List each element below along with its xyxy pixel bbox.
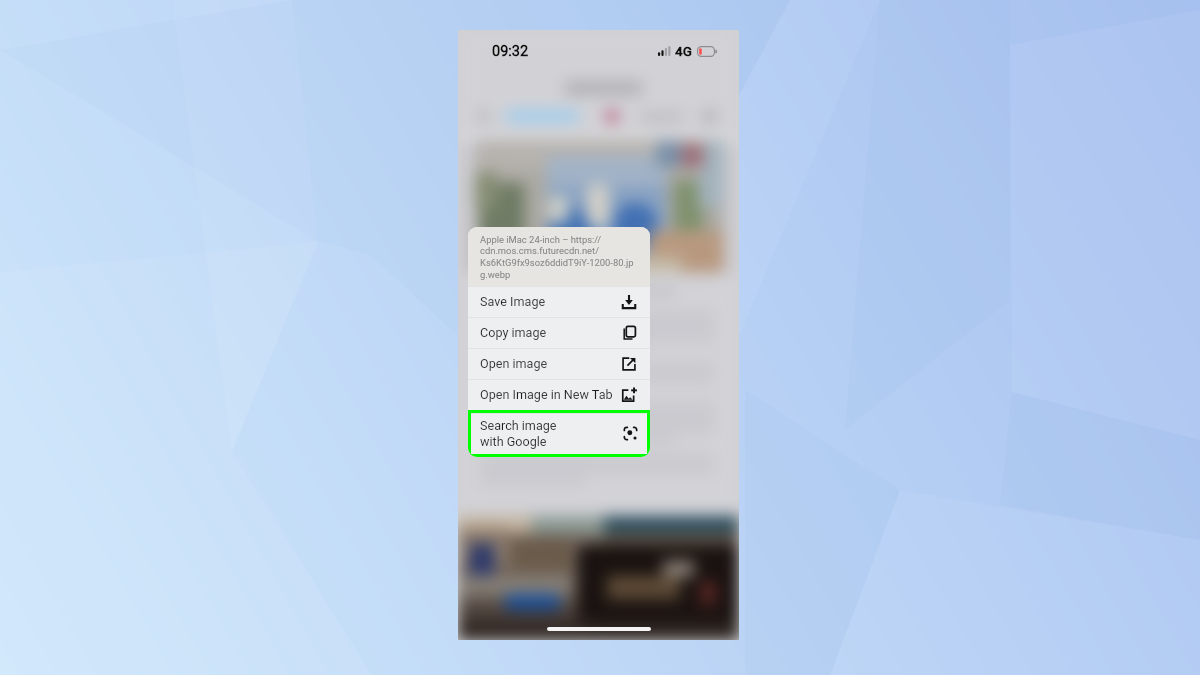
other: Save Image (621, 294, 637, 310)
button[interactable]: Copy image (468, 317, 650, 348)
staticText: Open Image in New Tab (480, 387, 613, 402)
other: Open image in new tab (621, 387, 637, 403)
button[interactable]: Open image (468, 348, 650, 379)
staticText: 09:32 (492, 43, 529, 60)
staticText: Copy image (480, 325, 547, 340)
button[interactable]: Save Image (468, 286, 650, 317)
staticText: Save Image (480, 294, 546, 309)
staticText: Apple iMac 24-inch – https:// cdn.mos.cm… (480, 234, 634, 280)
staticText: Open image (480, 356, 548, 371)
staticText: 4G (675, 43, 692, 59)
button[interactable]: Search image with Google (471, 413, 647, 454)
button[interactable]: Open Image in New Tab (468, 379, 650, 410)
other: Copy image (621, 325, 637, 341)
other: Open image (621, 356, 637, 372)
staticText: Search image with Google (480, 418, 557, 450)
other: Search image with Google (623, 426, 638, 441)
